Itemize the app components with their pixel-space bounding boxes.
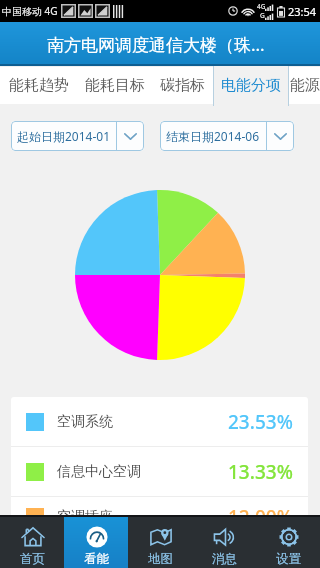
button[interactable]: 电能分项 <box>214 67 288 104</box>
staticText: 南方电网调度通信大楼（珠... <box>47 33 265 56</box>
staticText: 23:54 <box>288 4 317 19</box>
button[interactable]: 看能 <box>64 517 128 568</box>
button[interactable]: 空调插座 <box>11 497 308 537</box>
button[interactable]: 空调系统 <box>11 397 308 446</box>
button[interactable]: 首页 <box>0 517 64 568</box>
button[interactable]: 能耗趋势 <box>0 67 78 104</box>
staticText: 空调插座 <box>57 508 113 526</box>
staticText: 中国移动 4G <box>2 4 58 18</box>
staticText: 首页 <box>20 551 45 567</box>
staticText: 看能 <box>84 551 109 567</box>
staticText: 能耗目标 <box>85 76 145 95</box>
staticText: 能源 <box>290 76 320 95</box>
staticText: 起始日期2014-01 <box>17 128 111 144</box>
staticText: 能耗趋势 <box>9 76 69 95</box>
staticText: 结束日期2014-06 <box>166 128 260 144</box>
staticText: 12.00% <box>228 504 293 530</box>
staticText: G <box>260 11 265 20</box>
button[interactable]: 南方电网调度通信大楼（珠... <box>0 22 320 66</box>
button[interactable]: 消息 <box>192 517 256 568</box>
button[interactable]: 设置 <box>256 517 320 568</box>
button[interactable]: 地图 <box>128 517 192 568</box>
staticText: 4G <box>257 2 265 11</box>
button[interactable]: 碳指标 <box>152 67 213 104</box>
staticText: 设置 <box>276 551 301 567</box>
staticText: 地图 <box>148 551 173 567</box>
button[interactable]: 信息中心空调 <box>11 447 308 496</box>
staticText: 碳指标 <box>160 76 205 95</box>
button[interactable]: 能源 <box>289 67 320 104</box>
staticText: 信息中心空调 <box>57 463 141 481</box>
staticText: 13.33% <box>228 459 293 485</box>
staticText: 空调系统 <box>57 413 113 431</box>
button[interactable]: 起始日期2014-01 <box>11 121 144 151</box>
staticText: 23.53% <box>228 409 293 435</box>
button[interactable]: 能耗目标 <box>78 67 152 104</box>
button[interactable]: 结束日期2014-06 <box>160 121 294 151</box>
staticText: 消息 <box>212 551 237 567</box>
staticText: 电能分项 <box>221 76 281 95</box>
